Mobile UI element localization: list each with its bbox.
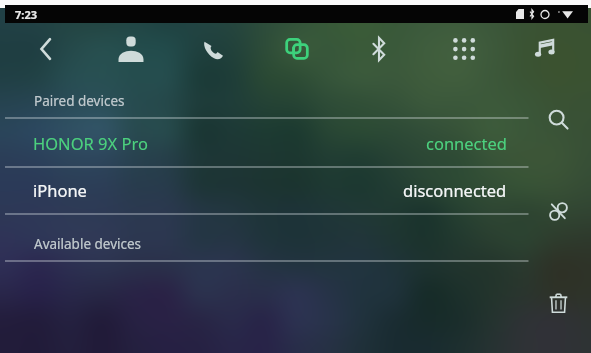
button[interactable]: Paired devices [5,74,588,118]
staticText: disconnected [403,179,507,201]
staticText: HONOR 9X Pro [33,132,148,154]
button[interactable]: Connected devices [279,31,315,67]
staticText: Paired devices [34,92,125,110]
button[interactable]: Keypad [446,31,482,67]
button[interactable]: Dialer [195,31,231,67]
button[interactable]: Music [528,31,564,67]
button[interactable]: Bluetooth [361,31,397,67]
staticText: Available devices [34,235,142,253]
button[interactable]: Contacts [113,31,149,67]
button[interactable]: Delete [538,283,578,323]
button[interactable]: Search [538,99,578,139]
button[interactable]: HONOR 9X Pro [5,118,588,167]
button[interactable]: Back [28,31,64,67]
button[interactable]: Available devices [5,214,588,261]
button[interactable]: Disconnect [538,191,578,231]
button[interactable]: iPhone [5,167,588,214]
staticText: iPhone [33,179,87,201]
staticText: connected [426,132,507,154]
staticText: 7:23 [15,7,37,22]
